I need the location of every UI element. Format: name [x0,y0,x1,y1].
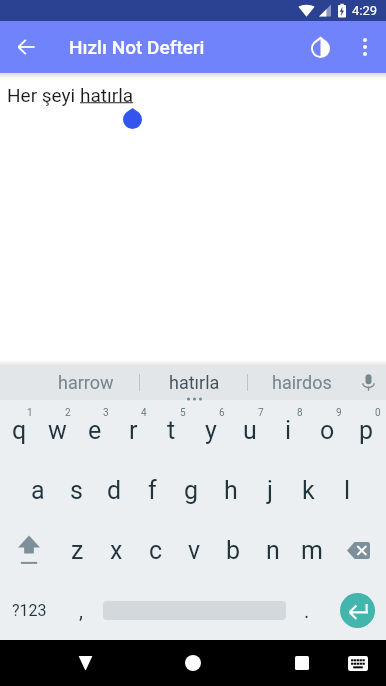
button[interactable]: Back [62,640,108,686]
staticText: u [243,416,257,445]
button[interactable]: 4 [114,400,152,460]
button[interactable]: 7 [230,400,269,460]
button[interactable]: s [57,460,95,520]
staticText: v [188,536,201,565]
staticText: . [304,599,310,622]
staticText: 5 [180,407,186,419]
staticText: 6 [219,407,225,419]
button[interactable]: c [136,520,175,580]
staticText: ?123 [12,601,47,620]
staticText: Her şeyi [7,84,80,106]
button[interactable]: harrow [32,365,140,400]
staticText: hatırla [80,84,134,106]
button[interactable]: Shift [0,520,58,580]
button[interactable]: z [58,520,97,580]
staticText: hatırla [169,372,220,393]
staticText: k [302,476,315,505]
staticText: 7 [258,407,264,419]
staticText: y [205,416,217,445]
staticText: a [31,476,45,505]
staticText: t [167,416,176,445]
staticText: , [79,599,83,622]
staticText: 4:29 [352,3,378,18]
button[interactable]: x [97,520,136,580]
staticText: 0 [375,407,381,419]
staticText: f [148,476,157,505]
staticText: j [267,476,273,505]
button[interactable]: 0 [347,400,386,460]
button[interactable]: . [286,580,328,640]
button[interactable]: Recent apps [279,640,325,686]
staticText: 1 [27,407,33,419]
button[interactable]: 1 [0,400,38,460]
button[interactable]: More options [344,21,386,73]
staticText: x [110,536,123,565]
button[interactable]: 5 [152,400,191,460]
staticText: r [129,416,138,445]
staticText: l [344,476,351,505]
button[interactable]: m [292,520,331,580]
button[interactable]: Back [0,21,52,73]
staticText: d [107,476,122,505]
button[interactable]: b [214,520,253,580]
staticText: o [320,416,335,445]
staticText: h [224,476,238,505]
staticText: c [149,536,163,565]
staticText: n [266,536,280,565]
button[interactable]: Space [103,580,286,640]
button[interactable]: , [58,580,103,640]
button[interactable]: ?123 [0,580,58,640]
staticText: 9 [336,407,342,419]
button[interactable]: 9 [308,400,347,460]
staticText: 2 [65,407,71,419]
staticText: g [184,476,199,505]
button[interactable]: hairdos [248,365,356,400]
staticText: 8 [297,407,303,419]
staticText: m [301,536,323,565]
button[interactable]: Enter [328,580,386,640]
staticText: e [88,416,102,445]
button[interactable]: h [211,460,250,520]
button[interactable]: 8 [269,400,308,460]
button[interactable]: Switch keyboard [335,640,381,686]
staticText: q [12,416,27,445]
staticText: s [70,476,83,505]
staticText: hairdos [272,372,332,393]
button[interactable]: Invert colors [296,21,344,73]
button[interactable]: Voice input [353,365,383,400]
button[interactable]: l [328,460,367,520]
button[interactable]: n [253,520,292,580]
staticText: z [71,536,84,565]
staticText: 3 [103,407,109,419]
button[interactable]: 3 [76,400,114,460]
button[interactable]: Delete [331,520,386,580]
staticText: i [285,416,292,445]
staticText: 4 [141,407,147,419]
staticText: Hızlı Not Defteri [69,36,205,58]
staticText: b [226,536,241,565]
button[interactable]: 2 [38,400,76,460]
button[interactable]: g [172,460,211,520]
staticText: p [359,416,374,445]
button[interactable]: f [133,460,172,520]
button[interactable]: k [289,460,328,520]
staticText: harrow [58,372,114,393]
button[interactable]: d [95,460,133,520]
button[interactable]: 6 [191,400,230,460]
button[interactable]: j [250,460,289,520]
button[interactable]: v [175,520,214,580]
button[interactable]: Home [170,640,216,686]
button[interactable]: hatırla [140,365,248,400]
staticText: w [48,416,67,445]
button[interactable]: a [19,460,57,520]
